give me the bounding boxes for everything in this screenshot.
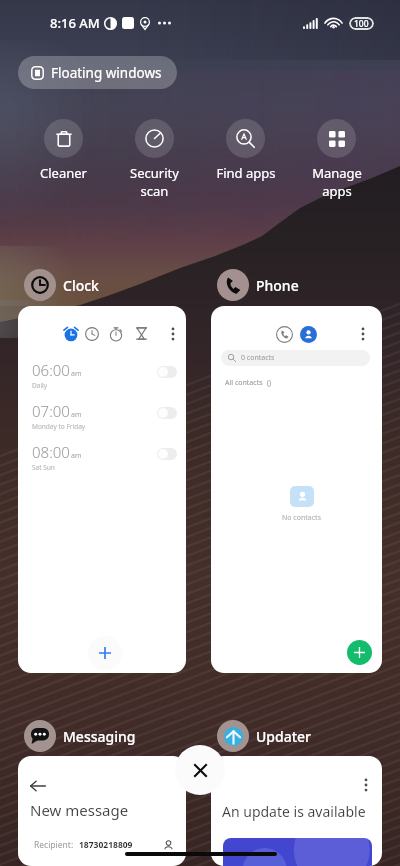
- button[interactable]: World clock: [85, 327, 99, 341]
- button[interactable]: Toggle alarm: [157, 366, 177, 378]
- staticText: am: [71, 369, 82, 379]
- button[interactable]: Contacts: [300, 326, 317, 343]
- button[interactable]: Stopwatch: [109, 327, 123, 341]
- staticText: 8:16 AM: [50, 14, 100, 32]
- button[interactable]: Floating windows: [18, 56, 177, 89]
- button[interactable]: Toggle alarm: [157, 407, 177, 419]
- button[interactable]: Find apps: [200, 119, 291, 182]
- button[interactable]: Clock: [24, 269, 99, 301]
- button[interactable]: Back: [18, 756, 186, 866]
- button[interactable]: Manage apps: [291, 119, 382, 200]
- button[interactable]: Security scan: [109, 119, 200, 200]
- staticText: 06:00: [32, 360, 70, 380]
- button[interactable]: Add alarm: [88, 636, 122, 670]
- button[interactable]: Close: [175, 745, 225, 795]
- staticText: 08:00: [32, 442, 70, 462]
- button[interactable]: Recents: [276, 326, 293, 343]
- button[interactable]: Toggle alarm: [157, 448, 177, 460]
- staticText: Floating windows: [51, 64, 162, 82]
- button[interactable]: Alarm: [63, 326, 79, 342]
- staticText: Messaging: [63, 727, 136, 746]
- button[interactable]: 0 contacts: [221, 350, 370, 366]
- staticText: Recipient:: [34, 839, 74, 851]
- button[interactable]: Cleaner: [18, 119, 109, 182]
- button[interactable]: Recents: [211, 306, 382, 673]
- staticText: 07:00: [32, 401, 70, 421]
- staticText: No contacts: [282, 513, 321, 523]
- button[interactable]: More options: [211, 756, 382, 866]
- staticText: New message: [30, 800, 129, 820]
- staticText: Updater: [256, 727, 312, 746]
- staticText: All contacts: [225, 378, 263, 388]
- staticText: Clock: [63, 276, 99, 295]
- staticText: 100: [354, 18, 369, 30]
- staticText: An update is available: [222, 802, 366, 821]
- staticText: Find apps: [216, 164, 276, 182]
- button[interactable]: More options: [359, 778, 373, 792]
- button[interactable]: Timer: [135, 327, 148, 340]
- button[interactable]: Phone: [217, 269, 299, 301]
- button[interactable]: Alarm: [18, 306, 186, 673]
- button[interactable]: Messaging: [24, 720, 136, 752]
- staticText: Daily: [32, 381, 48, 390]
- staticText: Monday to Friday: [32, 422, 86, 431]
- staticText: 18730218809: [79, 839, 133, 851]
- staticText: Sat Sun: [32, 463, 55, 472]
- staticText: am: [71, 410, 82, 420]
- button[interactable]: Updater: [217, 720, 312, 752]
- button[interactable]: Add contact: [347, 640, 372, 665]
- staticText: 0 contacts: [241, 353, 275, 363]
- staticText: Cleaner: [40, 164, 87, 182]
- staticText: Security scan: [130, 164, 179, 200]
- button[interactable]: Back: [30, 778, 46, 794]
- staticText: am: [71, 451, 82, 461]
- button[interactable]: More options: [356, 327, 370, 341]
- staticText: Manage apps: [312, 164, 362, 200]
- button[interactable]: More options: [166, 327, 180, 341]
- staticText: Phone: [256, 276, 299, 295]
